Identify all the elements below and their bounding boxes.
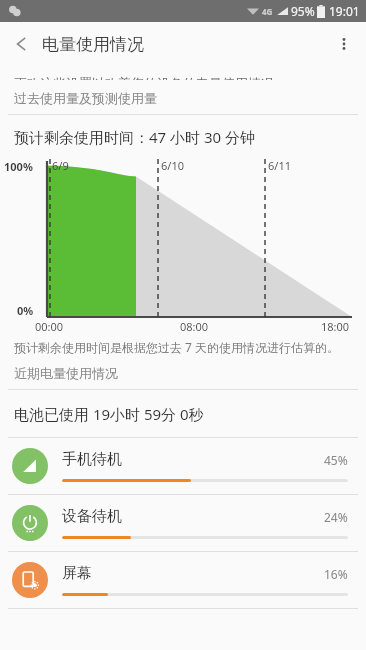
button[interactable]: More options: [322, 22, 366, 66]
staticText: 100%: [4, 159, 33, 174]
staticText: 24%: [324, 509, 348, 525]
button[interactable]: 屏幕: [0, 552, 366, 608]
button[interactable]: Back: [0, 22, 44, 66]
staticText: 19:01: [329, 3, 360, 19]
staticText: 更改这些设置以改善您的设备的电量使用情况: [14, 75, 274, 89]
staticText: 过去使用量及预测使用量: [14, 90, 157, 106]
staticText: 电池已使用 19小时 59分 0秒: [14, 404, 204, 424]
staticText: 4G: [262, 6, 273, 17]
staticText: 预计剩余使用时间：47 小时 30 分钟: [14, 127, 256, 147]
staticText: 45%: [324, 452, 348, 468]
staticText: 08:00: [180, 319, 209, 334]
staticText: 设备待机: [62, 507, 122, 526]
staticText: 6/9: [52, 158, 69, 173]
staticText: 近期电量使用情况: [14, 365, 118, 381]
staticText: 手机待机: [62, 450, 122, 469]
staticText: 预计剩余使用时间是根据您过去 7 天的使用情况进行估算的。: [14, 339, 340, 355]
staticText: 6/10: [161, 158, 184, 173]
staticText: 00:00: [35, 319, 64, 334]
staticText: 6/11: [268, 158, 291, 173]
staticText: 0%: [17, 303, 34, 318]
staticText: 16%: [324, 566, 348, 582]
staticText: 18:00: [321, 319, 350, 334]
button[interactable]: 设备待机: [0, 495, 366, 551]
button[interactable]: 手机待机: [0, 438, 366, 494]
staticText: 屏幕: [62, 564, 92, 583]
staticText: 电量使用情况: [42, 34, 144, 55]
staticText: 95%: [291, 3, 315, 19]
